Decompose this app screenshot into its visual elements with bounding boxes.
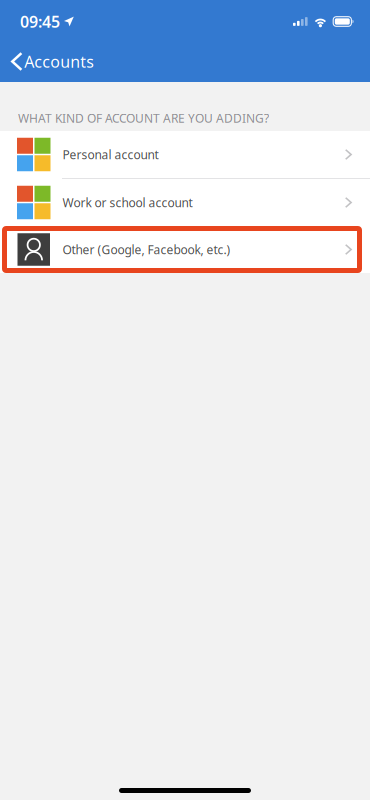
staticText: Personal account (62, 146, 158, 162)
button[interactable]: Other (Google, Facebook, etc.) (0, 226, 370, 273)
button[interactable]: Personal account (0, 131, 370, 179)
button[interactable]: Accounts (0, 41, 106, 82)
button[interactable]: Work or school account (0, 179, 370, 226)
staticText: Accounts (24, 51, 94, 72)
staticText: Work or school account (62, 194, 192, 210)
staticText: 09:45 (20, 11, 60, 32)
staticText: Other (Google, Facebook, etc.) (62, 241, 230, 257)
staticText: WHAT KIND OF ACCOUNT ARE YOU ADDING? (18, 110, 269, 126)
